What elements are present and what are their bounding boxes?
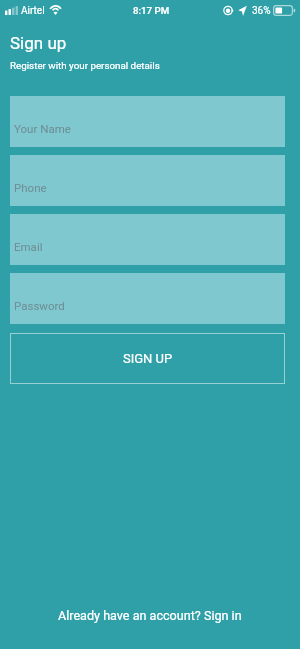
staticText: Register with your personal details [10, 60, 160, 71]
staticText: Airtel [21, 5, 45, 17]
other: Location [238, 5, 247, 16]
staticText: Sign up [10, 33, 67, 53]
staticText: Email [14, 240, 43, 253]
staticText: Already have an account? Sign in [58, 608, 242, 623]
button[interactable]: Email [10, 214, 285, 265]
button[interactable]: Already have an account? Sign in [0, 581, 300, 649]
staticText: Your Name [14, 122, 71, 135]
staticText: Password [14, 299, 65, 312]
other: Alarm [223, 5, 233, 16]
button[interactable]: SIGN UP [10, 333, 285, 384]
button[interactable]: Your Name [10, 96, 285, 147]
staticText: SIGN UP [123, 351, 173, 366]
button[interactable]: Password [10, 273, 285, 324]
other: Battery 36 percent [273, 5, 295, 16]
staticText: 8:17 PM [133, 5, 170, 16]
button[interactable]: Phone [10, 155, 285, 206]
staticText: 36% [252, 5, 271, 17]
staticText: Phone [14, 181, 47, 194]
